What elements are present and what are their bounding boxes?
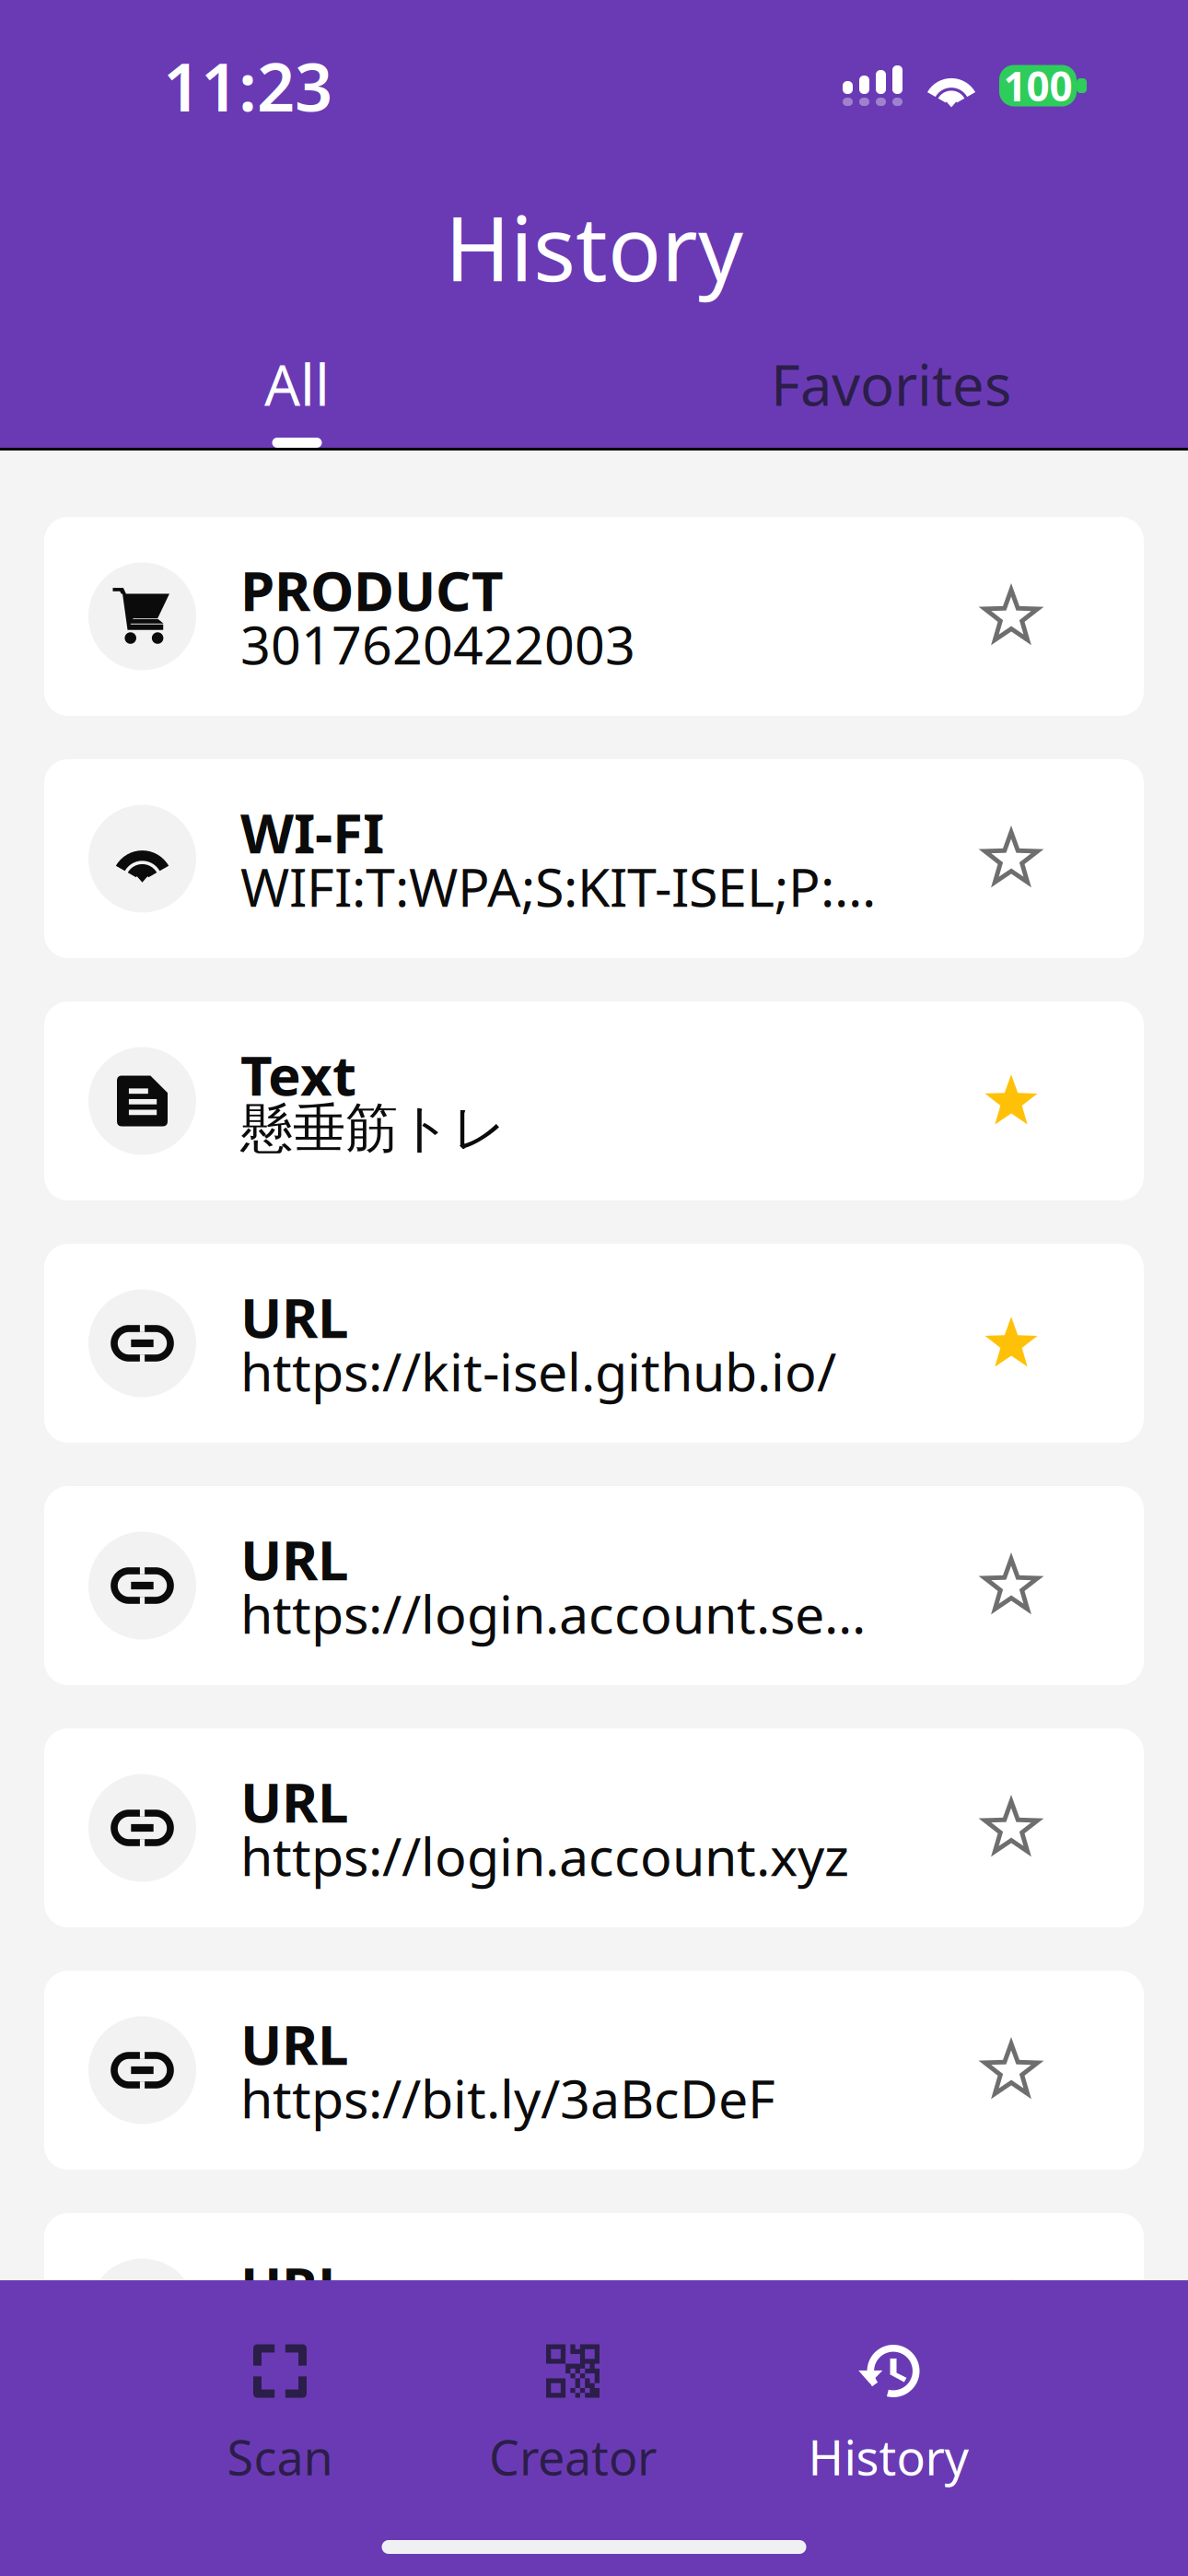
staticText: https://login.account.xyz [240,1820,849,1891]
staticText: WI-FI [240,795,384,869]
staticText: https://example.org/x [240,2305,778,2375]
button[interactable]: Favorites [594,335,1188,448]
staticText: URL [240,2249,349,2323]
staticText: 11:23 [163,42,332,130]
staticText: https://kit-isel.github.io/ [240,1336,836,1406]
button[interactable]: Text [44,1001,1144,1200]
button[interactable]: All [0,335,594,448]
staticText: URL [240,1280,349,1353]
staticText: 3017620422003 [240,609,635,679]
button[interactable]: URL [44,2213,1144,2412]
button[interactable]: WI-FI [44,759,1144,958]
button[interactable]: URL [44,1486,1144,1685]
staticText: WIFI:T:WPA;S:KIT-ISEL;P:123456… [240,851,879,921]
staticText: Favorites [771,346,1011,421]
button[interactable]: URL [44,1244,1144,1443]
staticText: History [808,2425,969,2489]
staticText: Text [240,1038,356,1111]
staticText: PRODUCT [240,553,504,626]
button[interactable]: PRODUCT [44,517,1144,716]
button[interactable]: Scan [134,2280,426,2576]
button[interactable]: Creator [426,2280,719,2576]
staticText: Scan [227,2425,333,2489]
staticText: All [264,346,330,421]
staticText: 100 [1003,59,1072,113]
staticText: URL [240,2007,349,2080]
staticText: History [445,188,743,306]
staticText: URL [240,1522,349,1596]
staticText: Creator [489,2425,657,2489]
button[interactable]: URL [44,1971,1144,2170]
staticText: URL [240,1765,349,1838]
staticText: 懸垂筋トレ [240,1096,507,1161]
staticText: https://bit.ly/3aBcDeF [240,2063,775,2133]
button[interactable]: URL [44,1728,1144,1927]
staticText: https://login.account.security.us… [240,1578,879,1648]
button[interactable]: History [719,2280,1058,2576]
